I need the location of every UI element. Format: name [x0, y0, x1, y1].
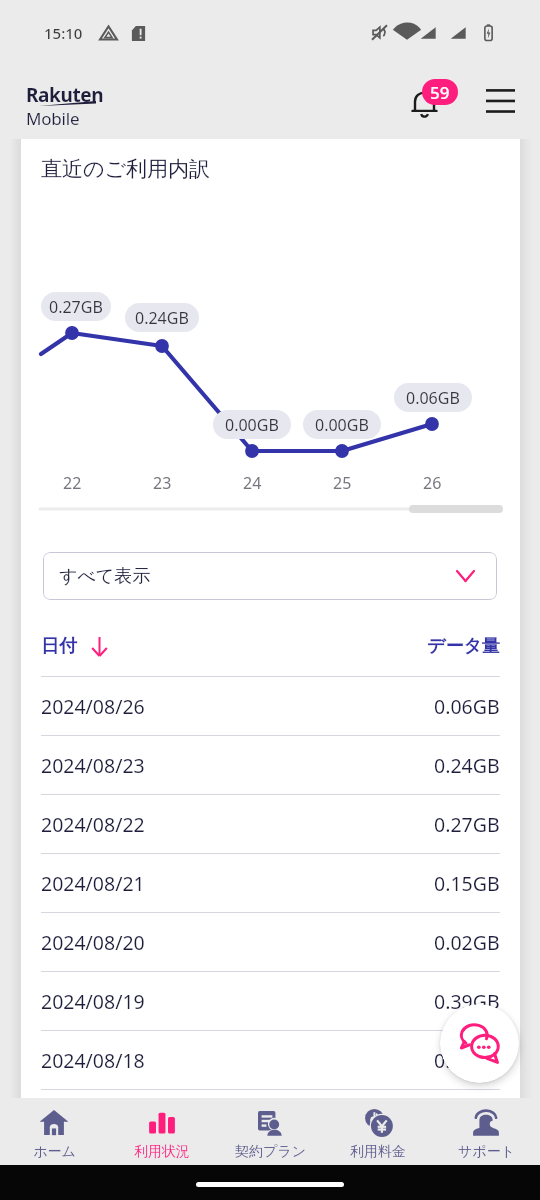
button[interactable]: 2024/08/21 — [41, 854, 500, 912]
staticText: 日付 — [41, 635, 77, 658]
staticText: 2024/08/26 — [41, 693, 145, 720]
staticText: すべて表示 — [59, 565, 151, 588]
staticText: 0.00GB — [315, 414, 369, 436]
button[interactable]: ホーム — [0, 1100, 108, 1166]
staticText: 25 — [333, 472, 352, 494]
staticText: 2024/08/22 — [41, 811, 145, 838]
button[interactable]: 2024/08/22 — [41, 795, 500, 853]
button[interactable]: 利用状況 — [108, 1100, 216, 1166]
staticText: 0.11GB — [434, 1047, 500, 1074]
staticText: 2024/08/23 — [41, 752, 145, 779]
staticText: 0.24GB — [434, 752, 500, 779]
staticText: データ量 — [427, 635, 500, 658]
staticText: 0.27GB — [49, 296, 103, 318]
staticText: 0.39GB — [434, 988, 500, 1015]
staticText: 直近のご利用内訳 — [41, 156, 210, 182]
staticText: Mobile — [26, 107, 80, 130]
button[interactable]: メニュー — [478, 78, 523, 123]
staticText: 26 — [423, 472, 442, 494]
staticText: 0.06GB — [406, 387, 460, 409]
button[interactable]: 日付 — [41, 632, 500, 660]
staticText: 0.06GB — [434, 693, 500, 720]
staticText: 2024/08/18 — [41, 1047, 145, 1074]
staticText: 利用状況 — [134, 1143, 190, 1161]
staticText: 利用料金 — [350, 1143, 406, 1161]
staticText: 0.00GB — [225, 414, 279, 436]
button[interactable]: チャットサポート — [440, 1004, 519, 1083]
button[interactable]: 利用料金 — [324, 1100, 432, 1166]
staticText: 2024/08/20 — [41, 929, 145, 956]
staticText: 0.02GB — [434, 929, 500, 956]
button[interactable]: 2024/08/23 — [41, 736, 500, 794]
button[interactable]: すべて表示 — [43, 552, 497, 600]
staticText: ホーム — [33, 1143, 76, 1161]
staticText: 23 — [153, 472, 172, 494]
button[interactable]: お知らせ — [402, 76, 460, 126]
staticText: サポート — [458, 1143, 515, 1161]
staticText: 契約プラン — [235, 1143, 306, 1161]
staticText: Rakuten — [26, 82, 104, 108]
button[interactable]: サポート — [432, 1100, 540, 1166]
staticText: 0.15GB — [434, 870, 500, 897]
button[interactable]: 2024/08/26 — [41, 677, 500, 735]
staticText: 0.24GB — [135, 307, 189, 329]
staticText: 22 — [63, 472, 82, 494]
button[interactable]: 2024/08/20 — [41, 913, 500, 971]
staticText: 2024/08/19 — [41, 988, 145, 1015]
staticText: 2024/08/21 — [41, 870, 145, 897]
staticText: 59 — [430, 81, 450, 104]
button[interactable]: 2024/08/19 — [41, 972, 500, 1030]
staticText: 15:10 — [44, 23, 83, 43]
button[interactable]: 契約プラン — [216, 1100, 324, 1166]
staticText: 24 — [243, 472, 262, 494]
staticText: 0.27GB — [434, 811, 500, 838]
button[interactable]: 2024/08/18 — [41, 1031, 500, 1089]
